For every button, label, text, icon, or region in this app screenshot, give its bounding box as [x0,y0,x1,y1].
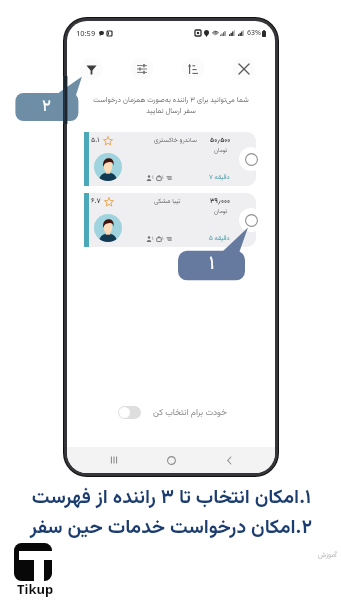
staticText: تیبا مشکی [154,196,181,206]
staticText: ۲ [42,94,51,121]
staticText: ساندرو خاکستری [154,135,197,145]
staticText: ۵ دقیقه [209,233,230,243]
button[interactable]: Sort [182,58,204,80]
button[interactable]: خودت برام انتخاب کن [118,406,227,419]
button[interactable]: Filter [80,58,102,80]
button[interactable]: Tune options [131,58,153,80]
button[interactable]: Close [233,58,255,80]
button[interactable]: ۵.۱ [84,132,256,186]
staticText: 63% [247,28,261,38]
staticText: ‏۱.‏امکان انتخاب تا ۳ راننده از فهرست [31,483,311,513]
staticText: شما می‌توانید برای ۳ راننده به‌صورت همزم… [89,95,253,117]
staticText: خودت برام انتخاب کن [153,406,227,419]
staticText: ۷ دقیقه [209,172,230,182]
button[interactable]: Back [218,449,240,471]
button[interactable]: Recents [103,449,125,471]
button[interactable]: Select driver [239,208,263,232]
staticText: ۱ [152,173,154,182]
staticText: ۳۹٫۰۰۰ [210,196,231,207]
button[interactable]: Home [160,449,182,471]
staticText: ۵.۱ [91,135,100,146]
staticText: ۱ [162,234,164,243]
staticText: Tikup [17,580,54,598]
button[interactable]: ۶.۷ [84,193,256,247]
staticText: ۵۰٫۵۰۰ [210,135,231,146]
staticText: ۶.۷ [91,196,101,207]
button[interactable]: Select driver [239,147,263,171]
staticText: آموزش [318,550,337,561]
staticText: تومان [214,207,228,216]
staticText: ۱ [162,173,164,182]
staticText: تومان [214,146,228,155]
staticText: 10:59 [76,28,96,38]
staticText: ‏۲.‏امکان درخواست خدمات حین سفر [29,513,312,543]
staticText: ۱ [209,250,215,280]
staticText: ۱ [152,234,154,243]
